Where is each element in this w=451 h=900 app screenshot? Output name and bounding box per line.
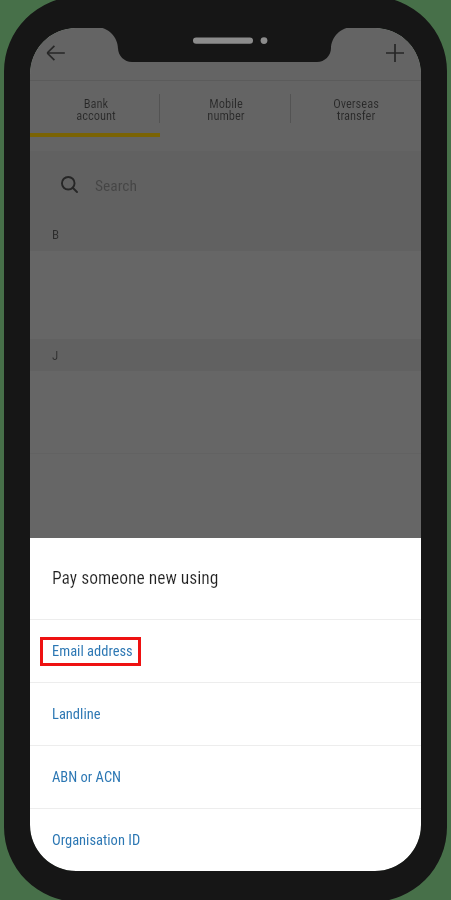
button[interactable]: ABN or ACN: [30, 746, 421, 808]
staticText: ABN or ACN: [52, 769, 122, 786]
staticText: Pay someone new using: [52, 568, 219, 589]
staticText: Email address: [52, 643, 133, 660]
button[interactable]: Add: [377, 35, 413, 71]
button[interactable]: Back: [38, 35, 74, 71]
staticText: J: [52, 348, 59, 363]
staticText: Bank account: [76, 96, 116, 123]
button[interactable]: Organisation ID: [30, 809, 421, 871]
staticText: B: [52, 227, 60, 242]
button[interactable]: Mobile number: [161, 81, 291, 137]
staticText: Landline: [52, 706, 101, 723]
button[interactable]: Landline: [30, 683, 421, 745]
staticText: Organisation ID: [52, 832, 141, 849]
staticText: Search: [95, 177, 137, 195]
staticText: Overseas transfer: [333, 96, 379, 123]
button[interactable]: Overseas transfer: [291, 81, 421, 137]
button[interactable]: Email address: [30, 620, 421, 682]
staticText: Mobile number: [207, 96, 245, 123]
button[interactable]: Bank account: [30, 81, 161, 137]
